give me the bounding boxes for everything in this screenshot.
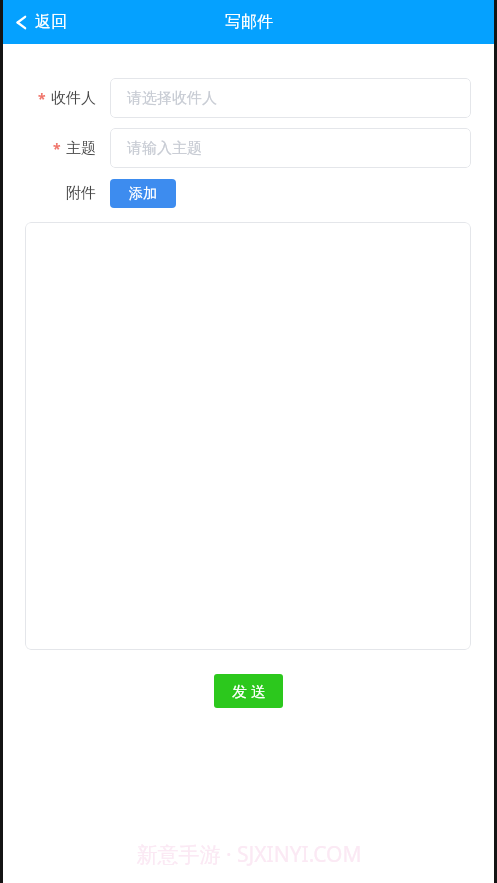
button[interactable]: 添加 [110,179,176,208]
button[interactable]: 发 送 [214,674,283,708]
staticText: 收件人 [51,89,96,108]
staticText: 发 送 [232,681,266,701]
button[interactable]: 返回 [9,6,73,38]
staticText: 新意手游 · SJXINYI.COM [136,840,362,869]
staticText: * [38,89,46,108]
staticText: 主题 [66,139,96,158]
staticText: 返回 [35,12,67,32]
button[interactable]: 请选择收件人 [110,78,471,118]
button[interactable]: 请输入主题 [110,128,471,168]
staticText: 请选择收件人 [127,89,217,108]
staticText: * [53,139,61,158]
staticText: 添加 [129,185,157,203]
staticText: 附件 [66,184,96,203]
staticText: 写邮件 [225,12,273,32]
staticText: 请输入主题 [127,139,202,158]
